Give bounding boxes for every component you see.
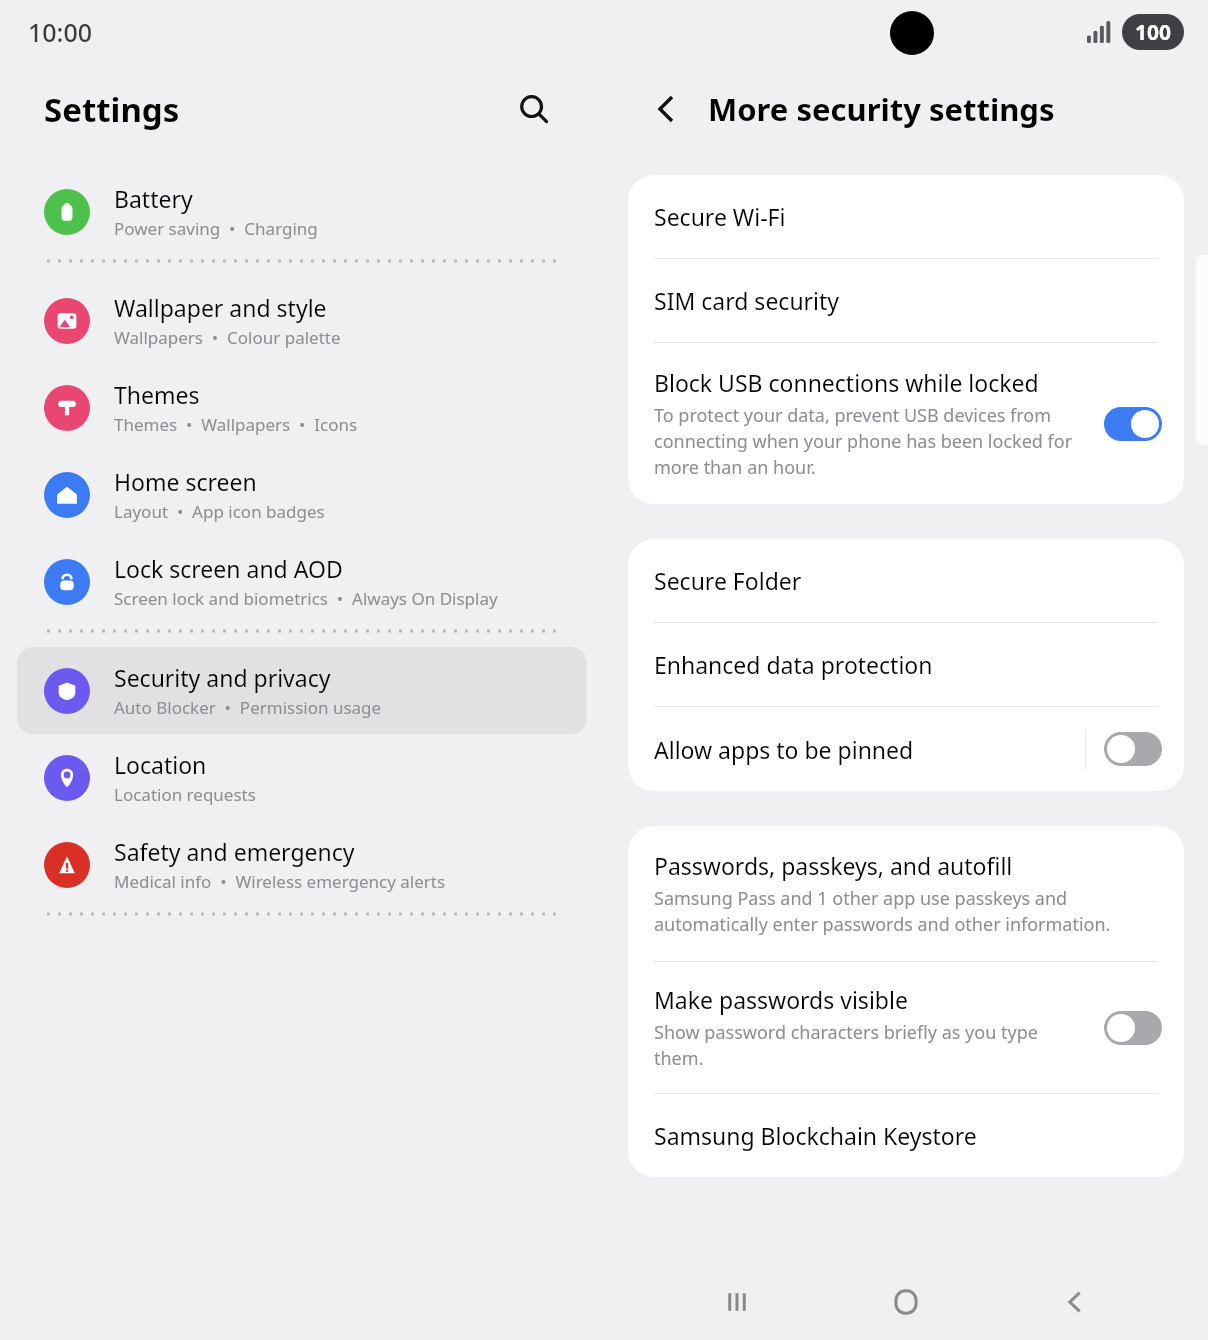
button[interactable]: Home [870,1266,942,1338]
staticText: Home screen [114,466,257,497]
staticText: Enhanced data protection [654,649,933,680]
staticText: Screen lock and biometrics • Always On D… [114,587,498,610]
staticText: Battery [114,183,193,214]
button[interactable]: Search [508,83,560,135]
staticText: Auto Blocker • Permission usage [114,696,382,719]
button[interactable]: Block USB connections while locked [628,343,1184,504]
staticText: Show password characters briefly as you … [654,1020,1090,1071]
staticText: Lock screen and AOD [114,553,343,584]
staticText: Make passwords visible [654,984,908,1015]
button[interactable]: Back [1039,1266,1111,1338]
button[interactable]: Back [640,83,692,135]
button[interactable]: Make passwords visible [628,962,1184,1093]
button[interactable]: Allow apps to be pinned [628,707,1184,791]
staticText: Medical info • Wireless emergency alerts [114,870,446,893]
button[interactable]: Location [17,734,587,821]
staticText: Allow apps to be pinned [654,734,914,765]
button[interactable]: Toggle on [1104,407,1162,441]
button[interactable]: Wallpaper and style [17,277,587,364]
button[interactable]: Home screen [17,451,587,538]
staticText: SIM card security [654,285,840,316]
button[interactable]: Secure Wi-Fi [628,175,1184,258]
staticText: To protect your data, prevent USB device… [654,403,1090,480]
button[interactable]: Toggle off [1104,732,1162,766]
staticText: Passwords, passkeys, and autofill [654,850,1013,881]
staticText: Secure Wi-Fi [654,201,786,232]
button[interactable]: Themes [17,364,587,451]
button[interactable]: Battery [17,168,587,255]
staticText: Location requests [114,783,256,806]
button[interactable]: Passwords, passkeys, and autofill [628,826,1184,961]
staticText: Samsung Pass and 1 other app use passkey… [654,886,1148,937]
button[interactable]: Samsung Blockchain Keystore [628,1094,1184,1177]
button[interactable]: Toggle off [1104,1011,1162,1045]
staticText: Security and privacy [114,662,331,693]
button[interactable]: Security and privacy [17,647,587,734]
staticText: More security settings [708,88,1055,130]
staticText: Power saving • Charging [114,217,318,240]
staticText: 100 [1135,18,1172,47]
staticText: Wallpaper and style [114,292,327,323]
staticText: Settings [44,87,508,132]
staticText: Layout • App icon badges [114,500,325,523]
staticText: Wallpapers • Colour palette [114,326,341,349]
button[interactable]: Enhanced data protection [628,623,1184,706]
staticText: Themes • Wallpapers • Icons [114,413,358,436]
button[interactable]: Lock screen and AOD [17,538,587,625]
button[interactable]: SIM card security [628,259,1184,342]
staticText: Secure Folder [654,565,802,596]
staticText: 10:00 [28,15,93,49]
staticText: Safety and emergency [114,836,355,867]
staticText: Themes [114,379,200,410]
staticText: Samsung Blockchain Keystore [654,1120,977,1151]
staticText: Block USB connections while locked [654,367,1039,398]
button[interactable]: Recents [701,1266,773,1338]
button[interactable]: Secure Folder [628,539,1184,622]
button[interactable]: Safety and emergency [17,821,587,908]
staticText: Location [114,749,207,780]
